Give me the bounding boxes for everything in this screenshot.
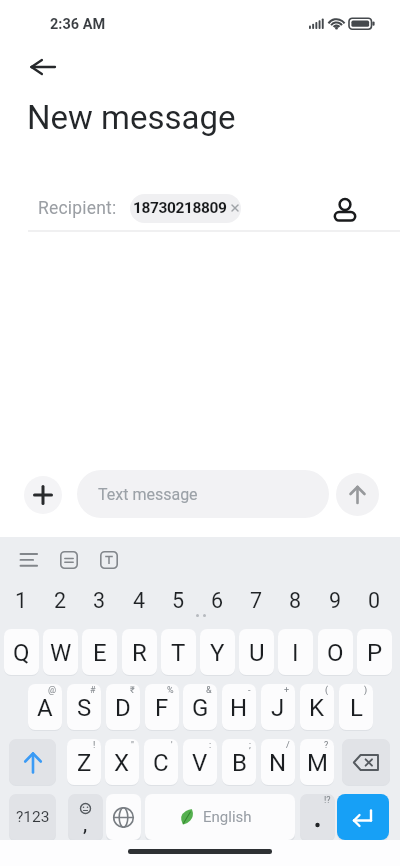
- button[interactable]: D: [106, 684, 140, 730]
- button[interactable]: 3: [82, 587, 117, 614]
- button[interactable]: 18730218809: [130, 194, 241, 223]
- button[interactable]: 0: [357, 587, 392, 614]
- button[interactable]: Q: [4, 629, 39, 675]
- button[interactable]: 6: [200, 587, 235, 614]
- staticText: English: [203, 808, 252, 826]
- button[interactable]: 8: [278, 587, 313, 614]
- staticText: I: [292, 639, 299, 667]
- staticText: 2:36 AM: [50, 16, 106, 33]
- button[interactable]: !?: [300, 794, 335, 840]
- button[interactable]: ,: [68, 794, 103, 840]
- button[interactable]: Text message: [77, 470, 329, 518]
- staticText: 6: [211, 588, 224, 613]
- button[interactable]: [54, 546, 85, 574]
- button[interactable]: I: [278, 629, 313, 675]
- button[interactable]: Z: [67, 739, 101, 785]
- staticText: New message: [27, 98, 236, 137]
- button[interactable]: [22, 50, 64, 84]
- button[interactable]: 5: [161, 587, 196, 614]
- button[interactable]: O: [318, 629, 353, 675]
- staticText: ₹: [130, 685, 135, 696]
- staticText: -: [248, 685, 251, 696]
- staticText: U: [249, 639, 265, 667]
- staticText: #: [90, 685, 96, 696]
- staticText: 8: [289, 588, 302, 613]
- button[interactable]: [24, 476, 62, 514]
- button[interactable]: W: [43, 629, 78, 675]
- staticText: 3: [93, 588, 106, 613]
- button[interactable]: [342, 739, 390, 785]
- button[interactable]: N: [261, 739, 295, 785]
- button[interactable]: M: [300, 739, 334, 785]
- staticText: 18730218809: [133, 199, 227, 217]
- staticText: P: [367, 639, 383, 667]
- button[interactable]: [328, 190, 362, 226]
- button[interactable]: U: [239, 629, 274, 675]
- button[interactable]: K: [300, 684, 334, 730]
- button[interactable]: S: [67, 684, 101, 730]
- staticText: Recipient:: [38, 198, 117, 219]
- staticText: C: [153, 749, 169, 777]
- button[interactable]: 9: [318, 587, 353, 614]
- staticText: 1: [15, 588, 28, 613]
- button[interactable]: 4: [122, 587, 157, 614]
- staticText: O: [327, 639, 344, 667]
- staticText: (: [325, 685, 329, 696]
- staticText: T: [171, 639, 186, 667]
- staticText: ?123: [16, 808, 50, 826]
- staticText: R: [132, 639, 147, 667]
- button[interactable]: B: [222, 739, 256, 785]
- button[interactable]: 7: [239, 587, 274, 614]
- button[interactable]: E: [82, 629, 117, 675]
- staticText: ": [131, 740, 134, 751]
- button[interactable]: J: [261, 684, 295, 730]
- staticText: @: [48, 685, 57, 696]
- button[interactable]: [106, 794, 141, 840]
- button[interactable]: C: [144, 739, 178, 785]
- button[interactable]: [12, 546, 45, 574]
- staticText: 0: [368, 588, 381, 613]
- button[interactable]: ?123: [9, 794, 56, 840]
- staticText: 9: [329, 588, 342, 613]
- staticText: L: [350, 694, 363, 722]
- staticText: ': [171, 740, 173, 751]
- button[interactable]: Y: [200, 629, 235, 675]
- button[interactable]: [337, 794, 389, 840]
- staticText: F: [155, 694, 169, 722]
- button[interactable]: 2: [43, 587, 78, 614]
- button[interactable]: P: [357, 629, 392, 675]
- staticText: W: [50, 639, 72, 667]
- button[interactable]: G: [183, 684, 217, 730]
- staticText: H: [230, 694, 248, 722]
- staticText: Text message: [98, 485, 198, 504]
- button[interactable]: [9, 739, 56, 785]
- staticText: Z: [77, 749, 92, 777]
- staticText: Q: [13, 639, 30, 667]
- button[interactable]: 1: [4, 587, 39, 614]
- button[interactable]: F: [145, 684, 179, 730]
- staticText: K: [309, 694, 325, 722]
- button[interactable]: [94, 546, 125, 574]
- staticText: V: [192, 749, 208, 777]
- staticText: Y: [210, 639, 225, 667]
- staticText: 4: [133, 588, 146, 613]
- button[interactable]: English: [145, 794, 295, 840]
- button[interactable]: [336, 473, 379, 516]
- button[interactable]: A: [28, 684, 62, 730]
- button[interactable]: R: [122, 629, 157, 675]
- staticText: +: [284, 685, 290, 696]
- staticText: D: [115, 694, 131, 722]
- button[interactable]: V: [183, 739, 217, 785]
- button[interactable]: H: [222, 684, 256, 730]
- button[interactable]: T: [161, 629, 196, 675]
- staticText: ,: [83, 813, 88, 835]
- staticText: 2: [54, 588, 67, 613]
- staticText: B: [232, 749, 247, 777]
- staticText: !?: [324, 795, 331, 806]
- staticText: &: [206, 685, 212, 696]
- button[interactable]: X: [105, 739, 139, 785]
- staticText: ;: [249, 740, 251, 751]
- button[interactable]: L: [339, 684, 373, 730]
- staticText: !: [93, 740, 96, 751]
- staticText: /: [286, 740, 290, 751]
